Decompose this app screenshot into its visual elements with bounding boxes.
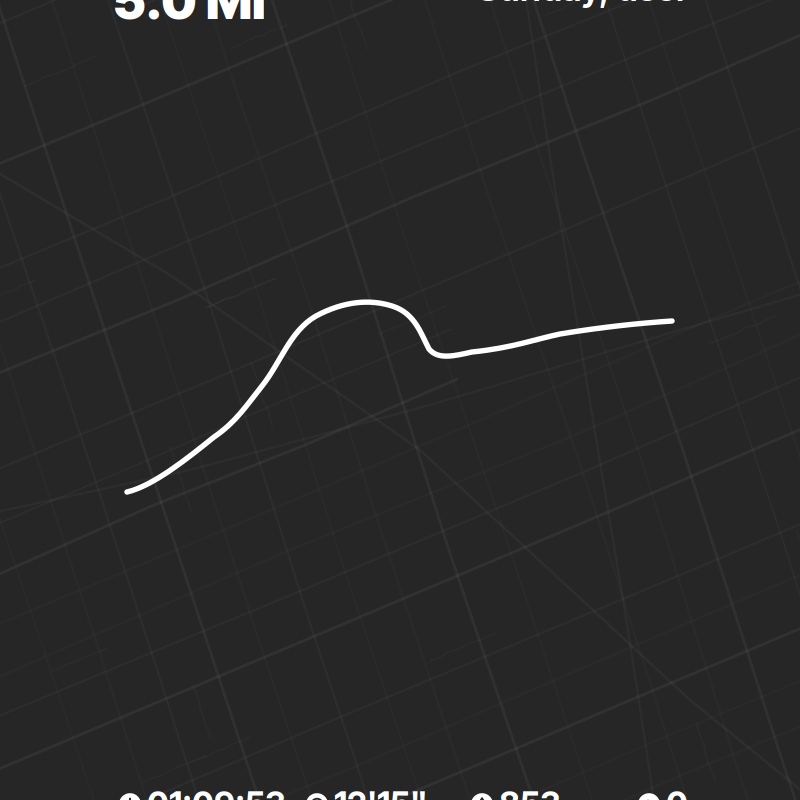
staticText: 01:09:53 bbox=[147, 784, 286, 800]
staticText: Sunday, user bbox=[477, 0, 689, 10]
staticText: 0 bbox=[666, 784, 688, 800]
staticText: 12'15" bbox=[334, 784, 428, 800]
button[interactable]: Duration bbox=[119, 784, 286, 800]
button[interactable]: Calories bbox=[471, 784, 561, 800]
staticText: 853 bbox=[499, 784, 561, 800]
button[interactable]: Elevation gain bbox=[638, 784, 688, 800]
staticText: 5.0 MI bbox=[113, 0, 266, 31]
button[interactable]: Average pace bbox=[306, 784, 428, 800]
